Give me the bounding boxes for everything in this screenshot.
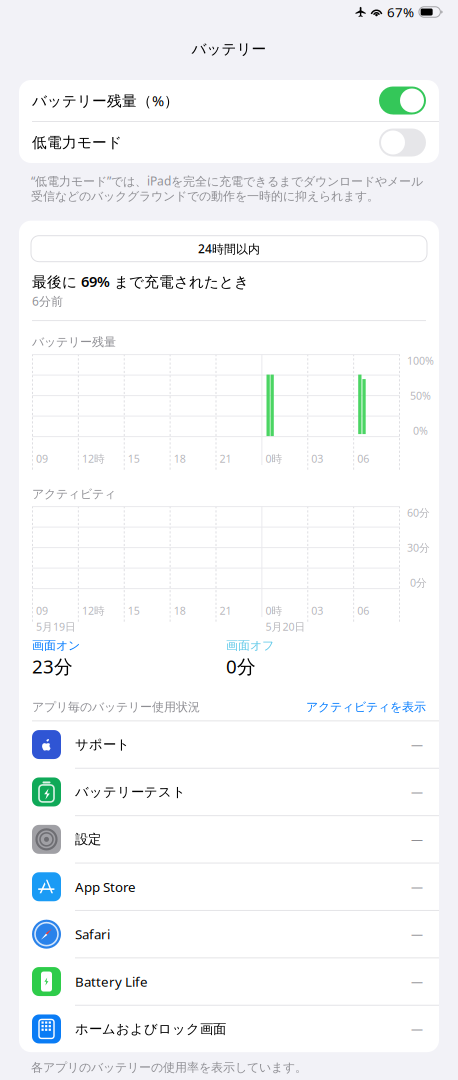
staticText: バッテリー残量（%）: [32, 91, 179, 110]
staticText: App Store: [75, 878, 136, 896]
staticText: サポート: [75, 736, 130, 753]
staticText: 15: [128, 451, 140, 466]
staticText: 5月19日: [36, 619, 76, 634]
staticText: 15: [128, 603, 140, 618]
staticText: ホームおよびロック画面: [75, 1021, 226, 1037]
staticText: 24時間以内: [198, 241, 260, 257]
staticText: 09: [36, 603, 48, 618]
staticText: —: [411, 926, 423, 942]
staticText: 06: [357, 451, 369, 466]
button[interactable]: 24時間以内: [31, 236, 427, 262]
staticText: アクティビティを表示: [306, 700, 426, 714]
staticText: 60分: [407, 505, 430, 520]
button[interactable]: サポート: [19, 721, 439, 768]
staticText: 0%: [413, 423, 428, 438]
button[interactable]: ホームおよびロック画面: [19, 1006, 439, 1052]
staticText: 画面オフ: [226, 638, 274, 653]
staticText: バッテリー残量: [32, 335, 116, 349]
button[interactable]: バッテリー残量（%）: [19, 80, 439, 121]
staticText: —: [411, 737, 423, 752]
staticText: バッテリー: [191, 40, 266, 58]
staticText: 09: [36, 451, 48, 466]
button[interactable]: Battery Life: [19, 958, 439, 1005]
staticText: 21: [219, 451, 231, 466]
staticText: Battery Life: [75, 973, 148, 990]
staticText: 12時: [82, 603, 105, 618]
staticText: 18: [174, 451, 186, 466]
staticText: “低電力モード”では、iPadを完全に充電できるまでダウンロードやメール受信など…: [31, 173, 423, 204]
staticText: 21: [219, 603, 231, 618]
staticText: —: [411, 831, 423, 847]
staticText: アクティビティ: [32, 487, 116, 501]
staticText: 各アプリのバッテリーの使用率を表示しています。: [31, 1060, 307, 1075]
staticText: 0分: [410, 575, 427, 590]
staticText: 画面オン: [32, 638, 80, 653]
staticText: —: [411, 879, 423, 895]
staticText: 最後に 69% まで充電されたとき: [32, 272, 249, 291]
staticText: —: [411, 974, 423, 989]
staticText: 67%: [387, 3, 414, 21]
staticText: 12時: [82, 451, 105, 466]
button[interactable]: バッテリーテスト: [19, 769, 439, 815]
staticText: 18: [174, 603, 186, 618]
button[interactable]: 設定: [19, 816, 439, 863]
staticText: 6分前: [32, 293, 63, 309]
button[interactable]: Safari: [19, 911, 439, 957]
staticText: 0時: [265, 451, 282, 466]
button[interactable]: App Store: [19, 864, 439, 910]
staticText: 03: [311, 603, 323, 618]
staticText: —: [411, 784, 423, 800]
staticText: Safari: [75, 925, 110, 943]
staticText: 23分: [32, 654, 73, 679]
staticText: 0分: [226, 654, 256, 679]
staticText: 50%: [410, 388, 431, 403]
staticText: 06: [357, 603, 369, 618]
staticText: —: [411, 1021, 423, 1037]
staticText: 設定: [75, 831, 101, 848]
staticText: 5月20日: [265, 619, 305, 634]
staticText: 03: [311, 451, 323, 466]
staticText: 100%: [407, 353, 434, 368]
staticText: バッテリーテスト: [75, 784, 186, 800]
staticText: 低電力モード: [32, 133, 122, 151]
button[interactable]: 低電力モード: [19, 122, 439, 163]
staticText: 30分: [407, 540, 430, 555]
button[interactable]: アクティビティを表示: [306, 700, 426, 714]
staticText: アプリ毎のバッテリー使用状況: [32, 700, 200, 714]
staticText: 0時: [265, 603, 282, 618]
